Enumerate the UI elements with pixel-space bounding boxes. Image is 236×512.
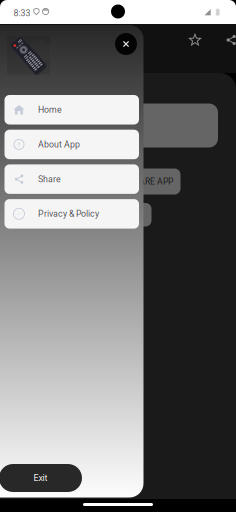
button[interactable]: Close menu bbox=[113, 31, 139, 57]
button[interactable]: Privacy & Policy bbox=[4, 199, 139, 229]
staticText: SHARE APP bbox=[128, 176, 173, 187]
button[interactable]: Share bbox=[4, 164, 139, 194]
button[interactable]: Favourite bbox=[184, 29, 206, 51]
staticText: 8:33 bbox=[13, 8, 30, 18]
button[interactable]: Home bbox=[4, 95, 139, 124]
staticText: Share bbox=[38, 174, 61, 184]
button[interactable]: Exit bbox=[0, 464, 82, 492]
staticText: About App bbox=[38, 139, 80, 150]
button[interactable]: POLICY bbox=[103, 203, 151, 226]
staticText: Privacy & Policy bbox=[38, 209, 99, 219]
staticText: Exit bbox=[33, 473, 47, 483]
button[interactable]: SHARE APP bbox=[120, 168, 180, 194]
staticText: Home bbox=[38, 105, 62, 115]
button[interactable]: Share bbox=[220, 29, 236, 51]
button[interactable]: About App bbox=[4, 130, 139, 159]
button[interactable]: ULTIMATE bbox=[18, 103, 218, 147]
staticText: POLICY bbox=[113, 210, 142, 220]
staticText: ULTIMATE bbox=[98, 120, 138, 131]
